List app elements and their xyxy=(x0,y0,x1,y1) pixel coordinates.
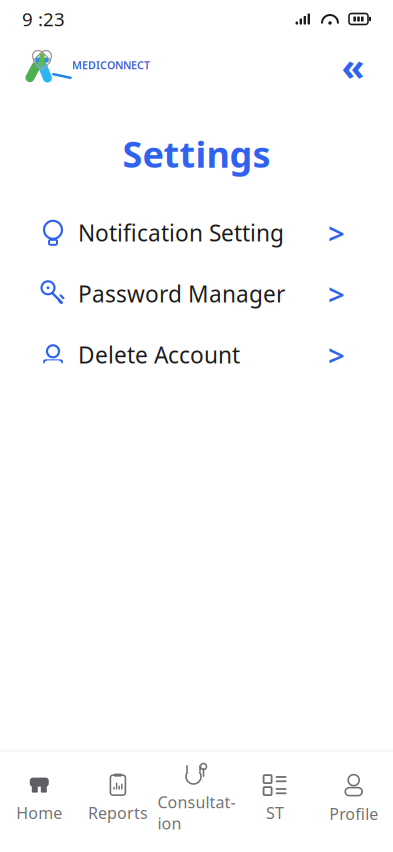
staticText: Delete Account xyxy=(78,340,240,370)
staticText: ST xyxy=(266,802,284,823)
staticText: > xyxy=(328,274,345,313)
staticText: > xyxy=(328,335,345,374)
button[interactable]: Home xyxy=(0,762,79,823)
staticText: Settings xyxy=(122,130,270,178)
staticText: Password Manager xyxy=(78,279,285,309)
staticText: Profile xyxy=(329,803,378,824)
button[interactable]: Reports xyxy=(79,762,157,823)
button[interactable]: Delete Account xyxy=(0,328,393,382)
staticText: > xyxy=(328,213,345,252)
button[interactable]: ST xyxy=(236,762,314,823)
button[interactable]: Back xyxy=(331,44,375,88)
staticText: Consultation xyxy=(157,791,235,834)
button[interactable]: Consultation xyxy=(157,751,236,834)
staticText: Home xyxy=(16,802,62,823)
staticText: Notification Setting xyxy=(78,218,284,248)
button[interactable]: Notification Setting xyxy=(0,206,393,260)
button[interactable]: Profile xyxy=(314,761,393,824)
staticText: Reports xyxy=(88,802,148,823)
staticText: MEDICONNECT xyxy=(72,58,150,72)
button[interactable]: Password Manager xyxy=(0,267,393,321)
staticText: « xyxy=(341,41,364,91)
staticText: 9 :23 xyxy=(22,7,65,31)
